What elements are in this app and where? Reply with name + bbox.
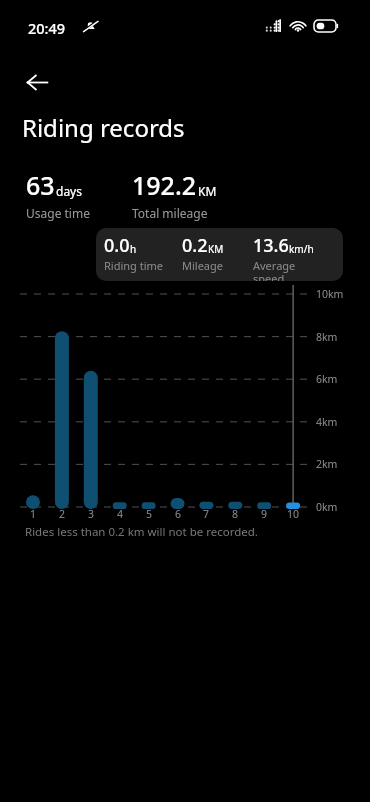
staticText: km/h <box>289 242 314 256</box>
other: Silent mode <box>83 19 98 34</box>
staticText: Total mileage <box>132 205 208 221</box>
staticText: KM <box>208 242 224 256</box>
staticText: 8km <box>316 330 338 344</box>
staticText: 7 <box>194 507 218 521</box>
staticText: 4 <box>108 507 132 521</box>
staticText: Usage time <box>26 205 90 221</box>
staticText: 0.0 <box>104 233 130 258</box>
staticText: 10 <box>281 507 305 521</box>
staticText: 5 <box>137 507 161 521</box>
staticText: 13.6 <box>253 233 289 258</box>
staticText: 1 <box>21 507 45 521</box>
staticText: h <box>130 242 137 256</box>
staticText: 0.2 <box>182 233 208 258</box>
staticText: Average speed <box>253 258 296 281</box>
staticText: 10km <box>316 287 344 301</box>
staticText: 2km <box>316 457 338 471</box>
staticText: Riding time <box>104 258 164 273</box>
staticText: 0km <box>316 500 338 514</box>
staticText: 192.2 <box>132 168 197 202</box>
staticText: 20:49 <box>28 18 66 38</box>
staticText: Riding records <box>22 111 185 144</box>
staticText: Mileage <box>182 258 223 273</box>
staticText: 2 <box>50 507 74 521</box>
staticText: 3 <box>79 507 103 521</box>
staticText: 6 <box>166 507 190 521</box>
staticText: 9 <box>252 507 276 521</box>
staticText: 63 <box>26 168 55 202</box>
button[interactable]: 0.0 <box>96 228 343 281</box>
staticText: Rides less than 0.2 km will not be recor… <box>25 524 258 540</box>
staticText: 8 <box>223 507 247 521</box>
staticText: days <box>56 183 82 199</box>
button[interactable]: Back <box>18 63 56 101</box>
staticText: KM <box>198 183 217 199</box>
staticText: 4km <box>316 415 338 429</box>
staticText: 6km <box>316 372 338 386</box>
